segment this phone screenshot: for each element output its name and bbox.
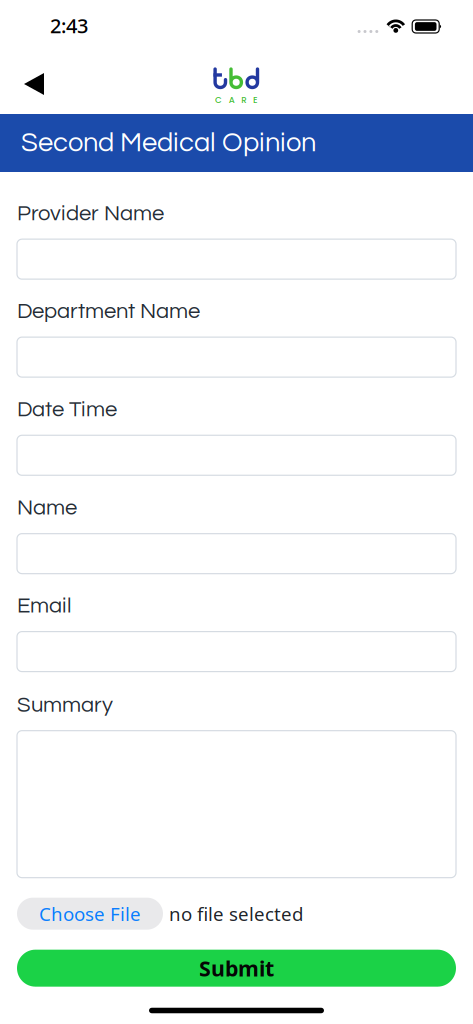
staticText: 2:43	[50, 12, 88, 39]
staticText: C	[215, 94, 222, 106]
staticText: R	[241, 94, 246, 106]
staticText: Choose File	[39, 901, 141, 926]
button[interactable]: Name	[17, 534, 456, 574]
button[interactable]: Provider Name	[17, 239, 456, 279]
staticText: Name	[17, 497, 77, 519]
button[interactable]: Department Name	[17, 337, 456, 377]
button[interactable]: Submit	[17, 950, 456, 987]
staticText: Email	[17, 594, 72, 617]
button[interactable]: Back	[0, 44, 60, 114]
staticText: Department Name	[17, 300, 200, 323]
button[interactable]: Choose File	[17, 898, 163, 930]
staticText: Second Medical Opinion	[21, 129, 316, 157]
staticText: Summary	[17, 694, 113, 716]
button[interactable]: Summary	[17, 731, 456, 878]
staticText: A	[229, 94, 235, 106]
staticText: Provider Name	[17, 202, 164, 225]
staticText: no file selected	[169, 901, 303, 926]
staticText: Date Time	[17, 398, 117, 421]
button[interactable]: Email	[17, 632, 456, 672]
staticText: Submit	[199, 954, 274, 982]
staticText: E	[253, 94, 258, 106]
button[interactable]: Date Time	[17, 435, 456, 475]
